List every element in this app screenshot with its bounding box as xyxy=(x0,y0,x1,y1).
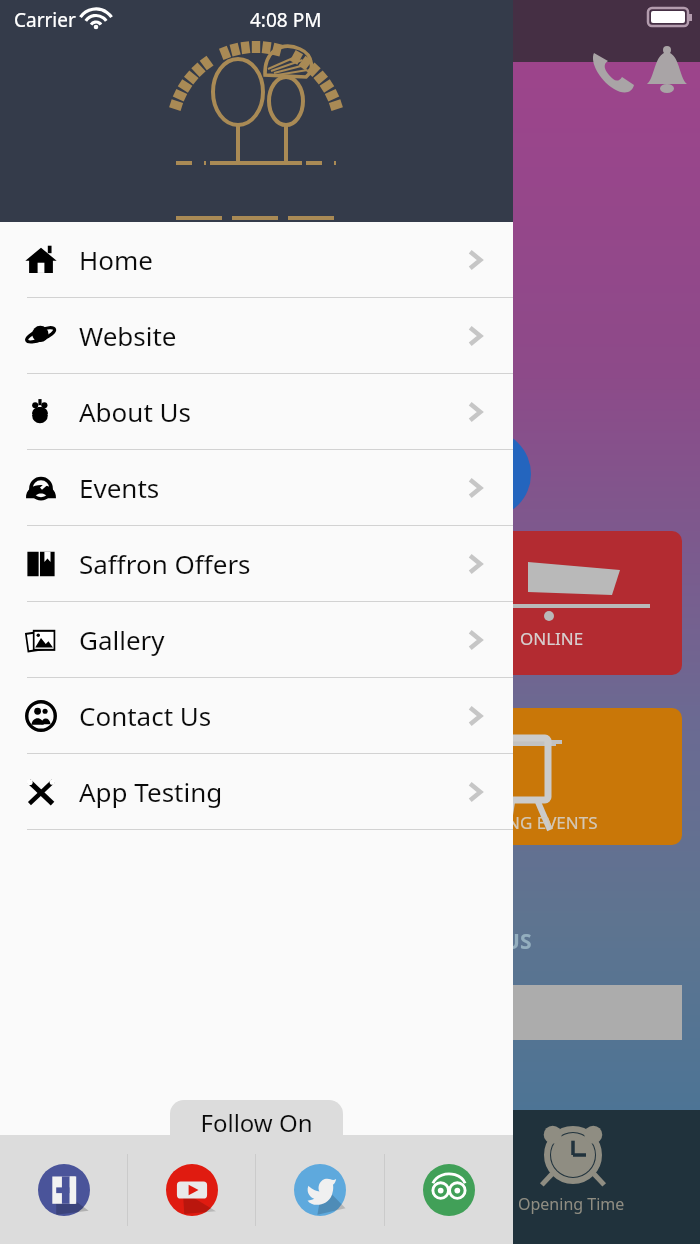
button[interactable]: YouTube xyxy=(128,1135,255,1244)
staticText: NG EVENTS xyxy=(507,811,598,834)
staticText: Carrier xyxy=(14,7,76,33)
staticText: Opening Time xyxy=(518,1193,625,1215)
button[interactable]: Follow On xyxy=(170,1100,343,1145)
button[interactable]: Contact Us xyxy=(0,678,513,753)
button[interactable]: Gallery xyxy=(0,602,513,677)
staticText: Website xyxy=(79,318,177,353)
staticText: Events xyxy=(79,470,160,505)
button[interactable]: About Us xyxy=(0,374,513,449)
staticText: Gallery xyxy=(79,622,165,657)
staticText: Home xyxy=(79,242,153,277)
button[interactable]: Events xyxy=(0,450,513,525)
staticText: App Testing xyxy=(79,774,223,809)
staticText: Saffron Offers xyxy=(79,546,251,581)
button[interactable]: Website xyxy=(0,298,513,373)
staticText: US xyxy=(504,927,532,956)
button[interactable]: Facebook xyxy=(0,1135,127,1244)
button[interactable]: Twitter xyxy=(256,1135,384,1244)
button[interactable]: App Testing xyxy=(0,754,513,829)
staticText: 4:08 PM xyxy=(250,7,322,33)
staticText: Follow On xyxy=(200,1106,313,1139)
staticText: Contact Us xyxy=(79,698,212,733)
button[interactable]: Home xyxy=(0,222,513,297)
button[interactable]: TripAdvisor xyxy=(385,1135,513,1244)
staticText: About Us xyxy=(79,394,192,429)
staticText: ONLINE xyxy=(520,627,584,650)
button[interactable]: Saffron Offers xyxy=(0,526,513,601)
